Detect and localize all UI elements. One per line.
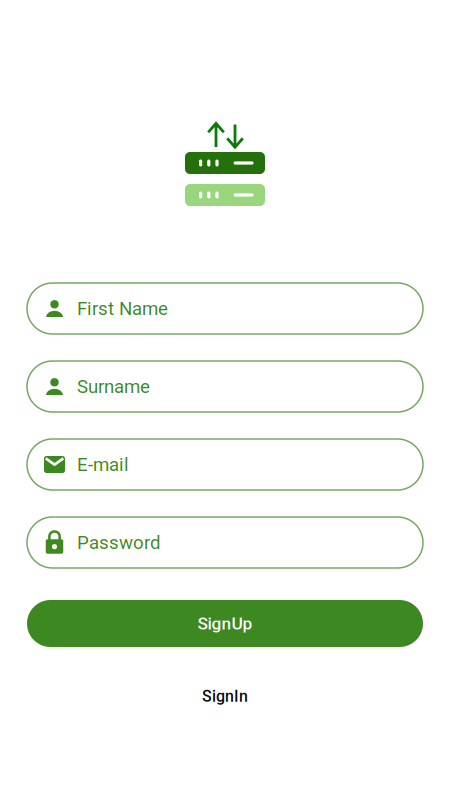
staticText: Surname xyxy=(77,376,150,397)
staticText: Password xyxy=(77,532,161,553)
button[interactable]: SignIn xyxy=(202,687,248,706)
button[interactable]: Password xyxy=(27,517,423,568)
staticText: First Name xyxy=(77,298,168,319)
staticText: SignUp xyxy=(197,613,252,634)
staticText: SignIn xyxy=(202,687,248,706)
button[interactable]: Surname xyxy=(27,361,423,412)
button[interactable]: E-mail xyxy=(27,439,423,490)
button[interactable]: SignUp xyxy=(27,600,423,647)
button[interactable]: First Name xyxy=(27,283,423,334)
staticText: E-mail xyxy=(77,454,129,475)
